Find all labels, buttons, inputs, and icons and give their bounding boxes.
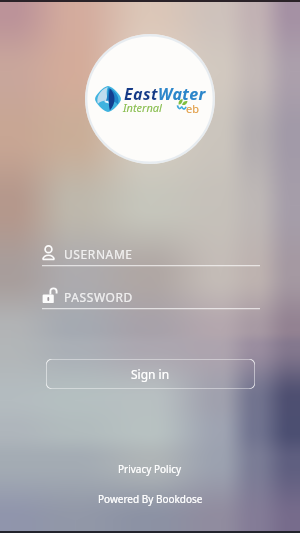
button[interactable]: Sign in [46,359,255,389]
button[interactable]: USERNAME [42,242,260,266]
staticText: USERNAME [64,246,133,262]
button[interactable]: PASSWORD [42,285,260,309]
staticText: Privacy Policy [118,462,182,476]
staticText: East [124,83,158,105]
staticText: Internal [123,100,162,115]
staticText: Water [158,83,206,105]
staticText: eb [186,101,199,116]
staticText: Sign in [131,366,170,382]
staticText: PASSWORD [64,289,133,305]
staticText: Powered By Bookdose [98,492,203,506]
button[interactable]: Privacy Policy [110,460,190,478]
